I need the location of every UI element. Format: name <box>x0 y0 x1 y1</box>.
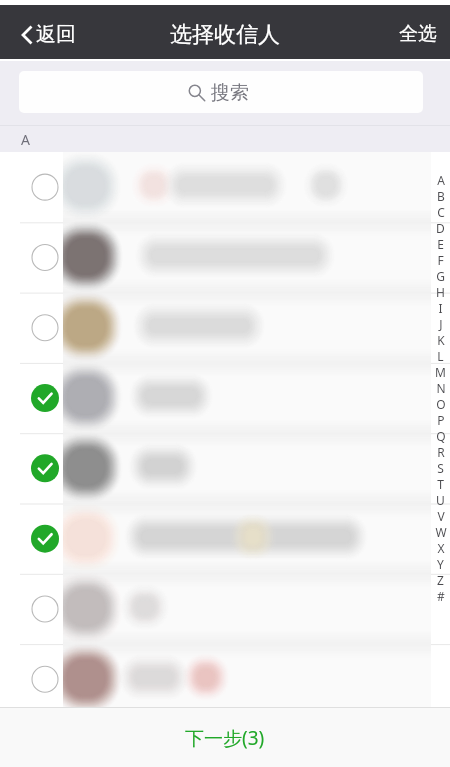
staticText: 下一步(3) <box>185 725 265 751</box>
staticText: A <box>437 172 445 188</box>
staticText: S <box>437 460 444 476</box>
staticText: O <box>436 396 446 412</box>
staticText: B <box>437 188 445 204</box>
staticText: T <box>437 476 444 492</box>
staticText: H <box>436 284 445 300</box>
staticText: 搜索 <box>211 81 249 105</box>
staticText: 选择收信人 <box>170 21 280 49</box>
staticText: 全选 <box>399 22 437 46</box>
button[interactable] <box>0 222 450 292</box>
button[interactable] <box>0 292 450 362</box>
button[interactable]: 下一步(3) <box>0 708 450 767</box>
button[interactable] <box>0 362 450 432</box>
staticText: W <box>435 524 447 540</box>
staticText: # <box>437 588 445 604</box>
staticText: F <box>437 252 444 268</box>
staticText: Y <box>437 556 444 572</box>
staticText: R <box>437 444 445 460</box>
staticText: I <box>438 300 443 316</box>
staticText: X <box>437 540 445 556</box>
button[interactable]: 全选 <box>389 12 450 56</box>
staticText: N <box>436 380 446 396</box>
button[interactable]: 搜索 <box>19 71 423 113</box>
staticText: U <box>436 492 445 508</box>
staticText: A <box>21 130 30 149</box>
button[interactable] <box>0 432 450 502</box>
staticText: C <box>437 204 445 220</box>
button[interactable] <box>0 642 450 707</box>
staticText: 返回 <box>36 22 76 47</box>
staticText: L <box>437 348 444 364</box>
staticText: D <box>436 220 445 236</box>
button[interactable] <box>0 152 450 222</box>
staticText: V <box>437 508 445 524</box>
staticText: M <box>435 364 446 380</box>
staticText: Z <box>437 572 444 588</box>
staticText: P <box>437 412 445 428</box>
button[interactable]: Alphabet index <box>431 172 450 604</box>
button[interactable] <box>0 572 450 642</box>
staticText: K <box>437 332 445 348</box>
staticText: E <box>437 236 444 252</box>
staticText: G <box>436 268 445 284</box>
button[interactable] <box>0 502 450 572</box>
staticText: Q <box>436 428 446 444</box>
staticText: J <box>439 316 443 332</box>
button[interactable]: 返回 <box>0 14 84 55</box>
